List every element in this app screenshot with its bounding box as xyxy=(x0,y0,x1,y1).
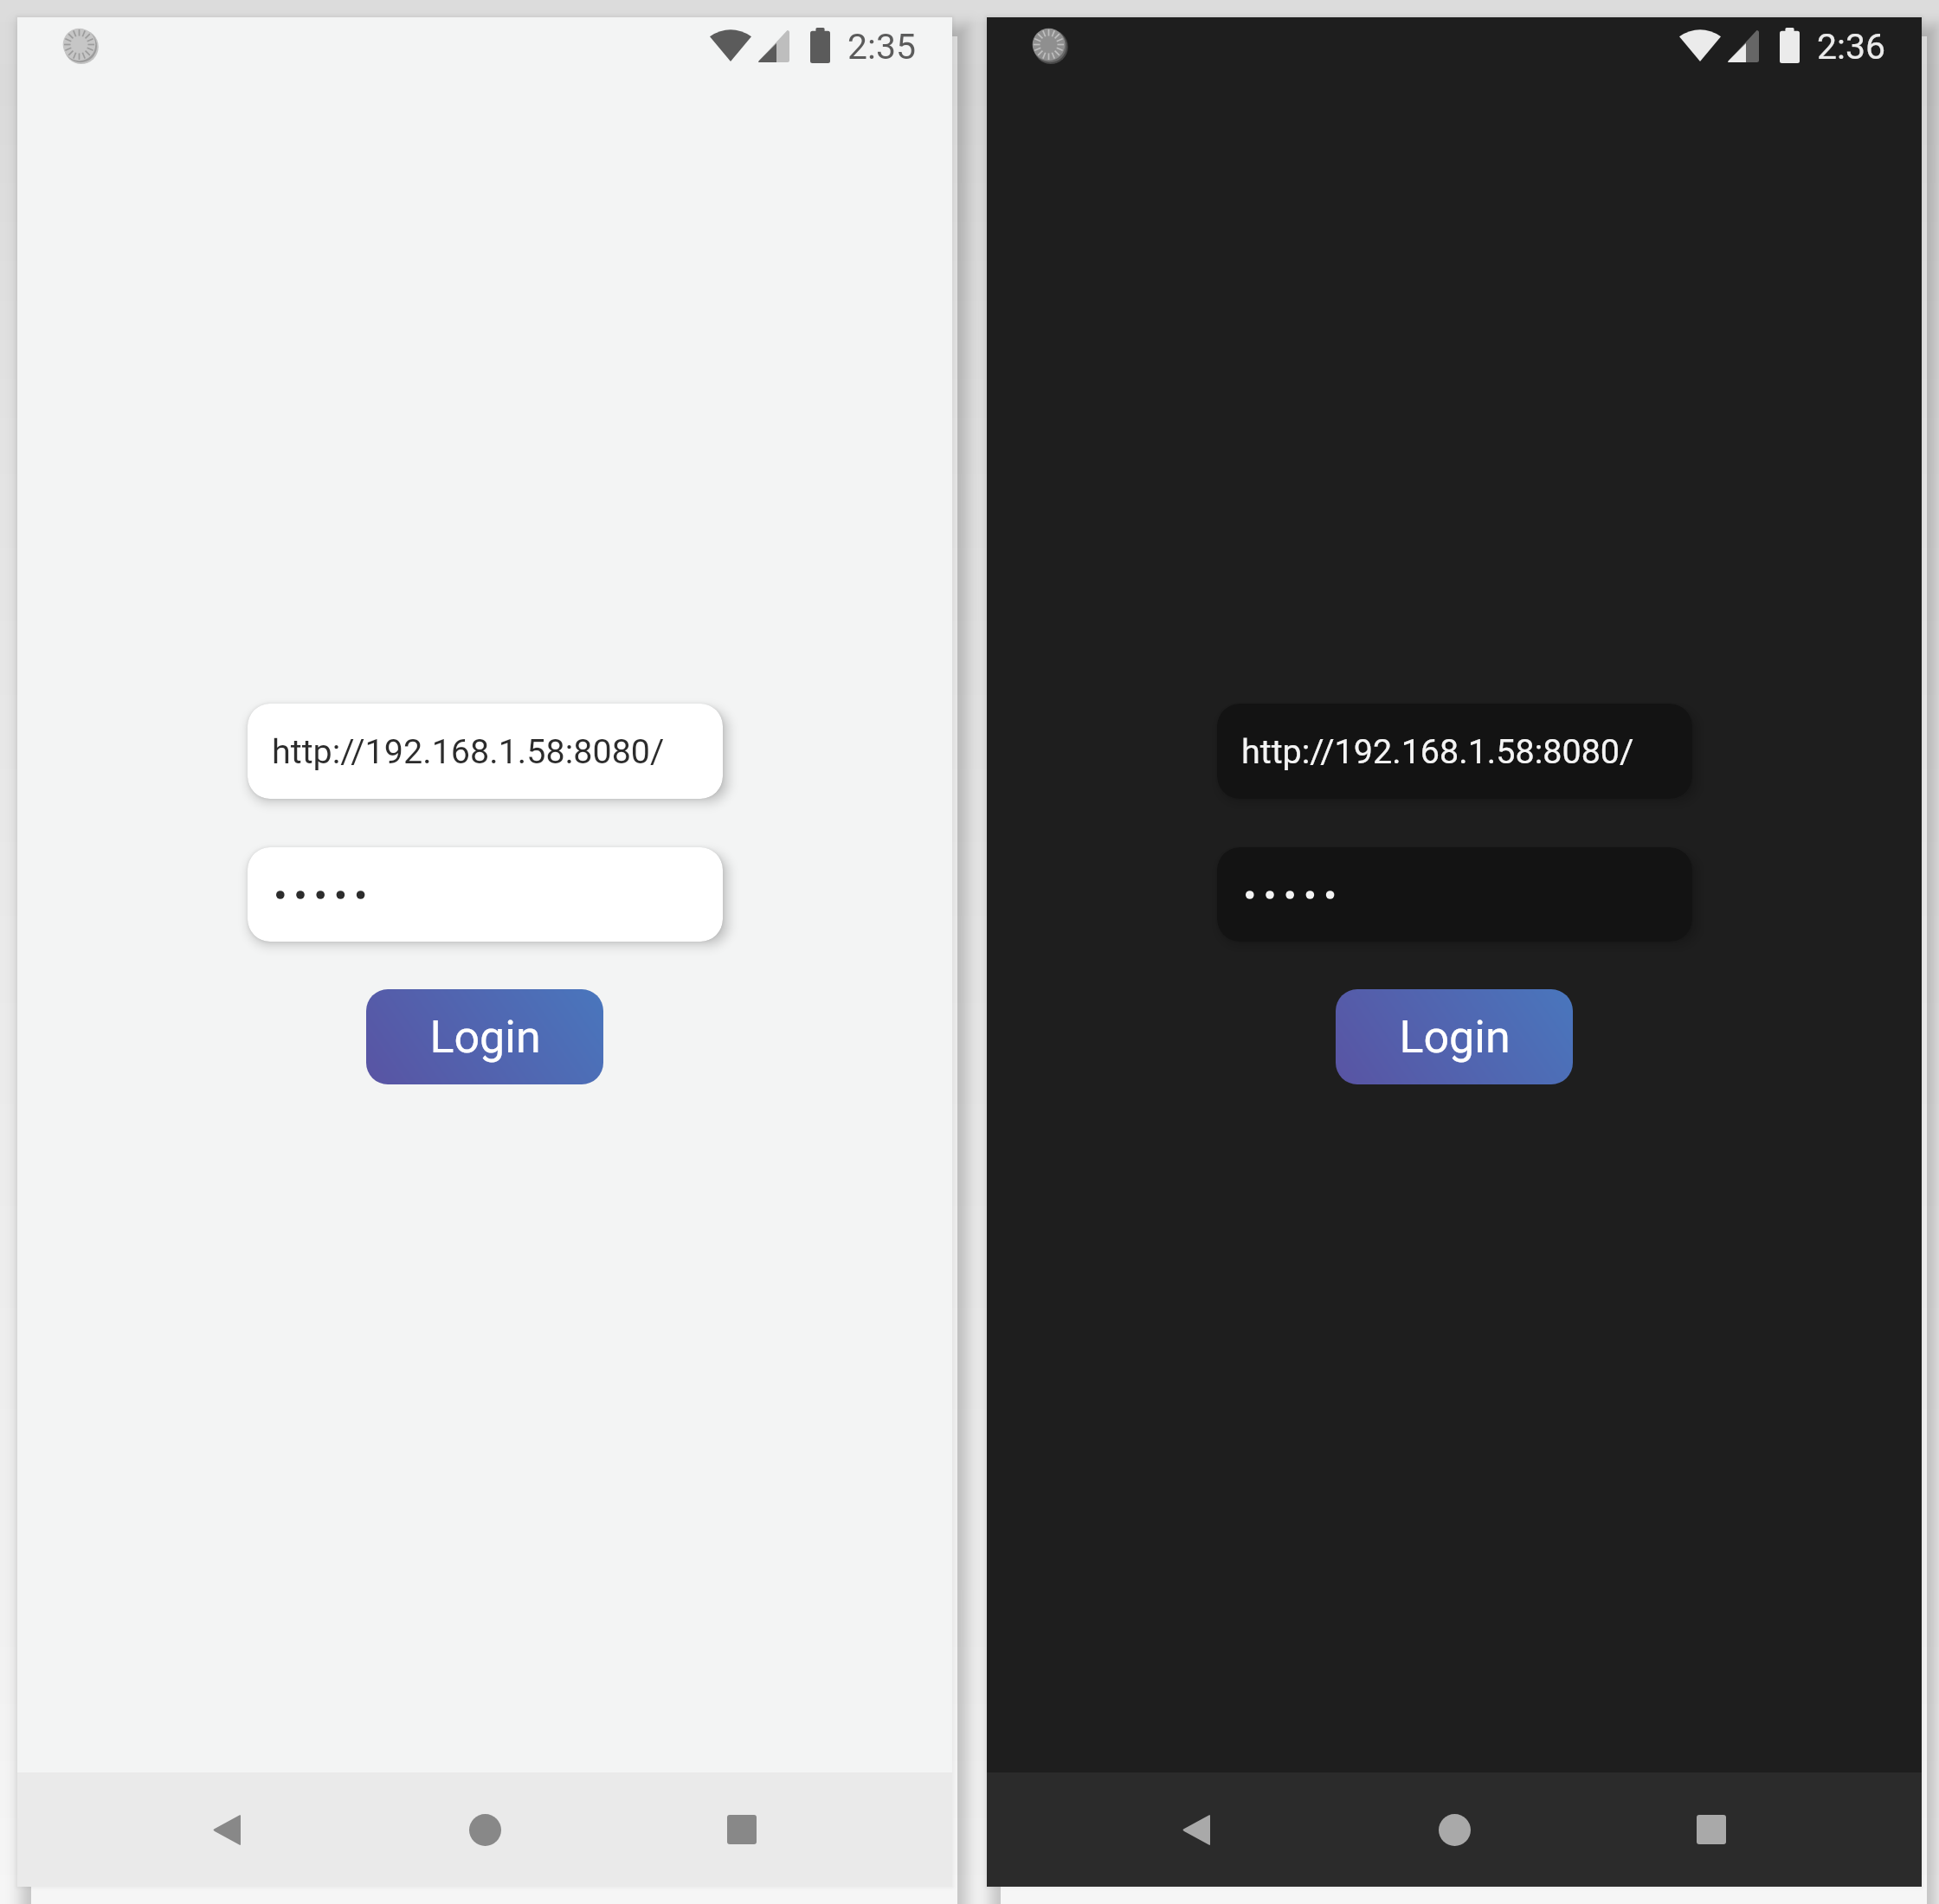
staticText: http://192.168.1.58:8080/ xyxy=(1241,731,1634,771)
button[interactable]: Back xyxy=(175,1772,279,1887)
button[interactable]: Recents xyxy=(690,1772,794,1887)
button[interactable]: Recents xyxy=(1659,1772,1763,1887)
staticText: 2:35 xyxy=(847,26,917,68)
button[interactable]: Login xyxy=(1336,989,1573,1084)
staticText: Login xyxy=(1399,1011,1511,1064)
button[interactable]: Home xyxy=(1402,1772,1506,1887)
button[interactable]: Login xyxy=(366,989,603,1084)
staticText: 2:36 xyxy=(1817,26,1886,68)
button[interactable] xyxy=(1217,847,1692,942)
button[interactable] xyxy=(248,847,723,942)
button[interactable]: Back xyxy=(1144,1772,1248,1887)
button[interactable]: http://192.168.1.58:8080/ xyxy=(1217,704,1692,799)
button[interactable]: Home xyxy=(433,1772,537,1887)
button[interactable]: http://192.168.1.58:8080/ xyxy=(248,704,723,799)
staticText: Login xyxy=(429,1011,541,1064)
staticText: http://192.168.1.58:8080/ xyxy=(272,731,665,771)
